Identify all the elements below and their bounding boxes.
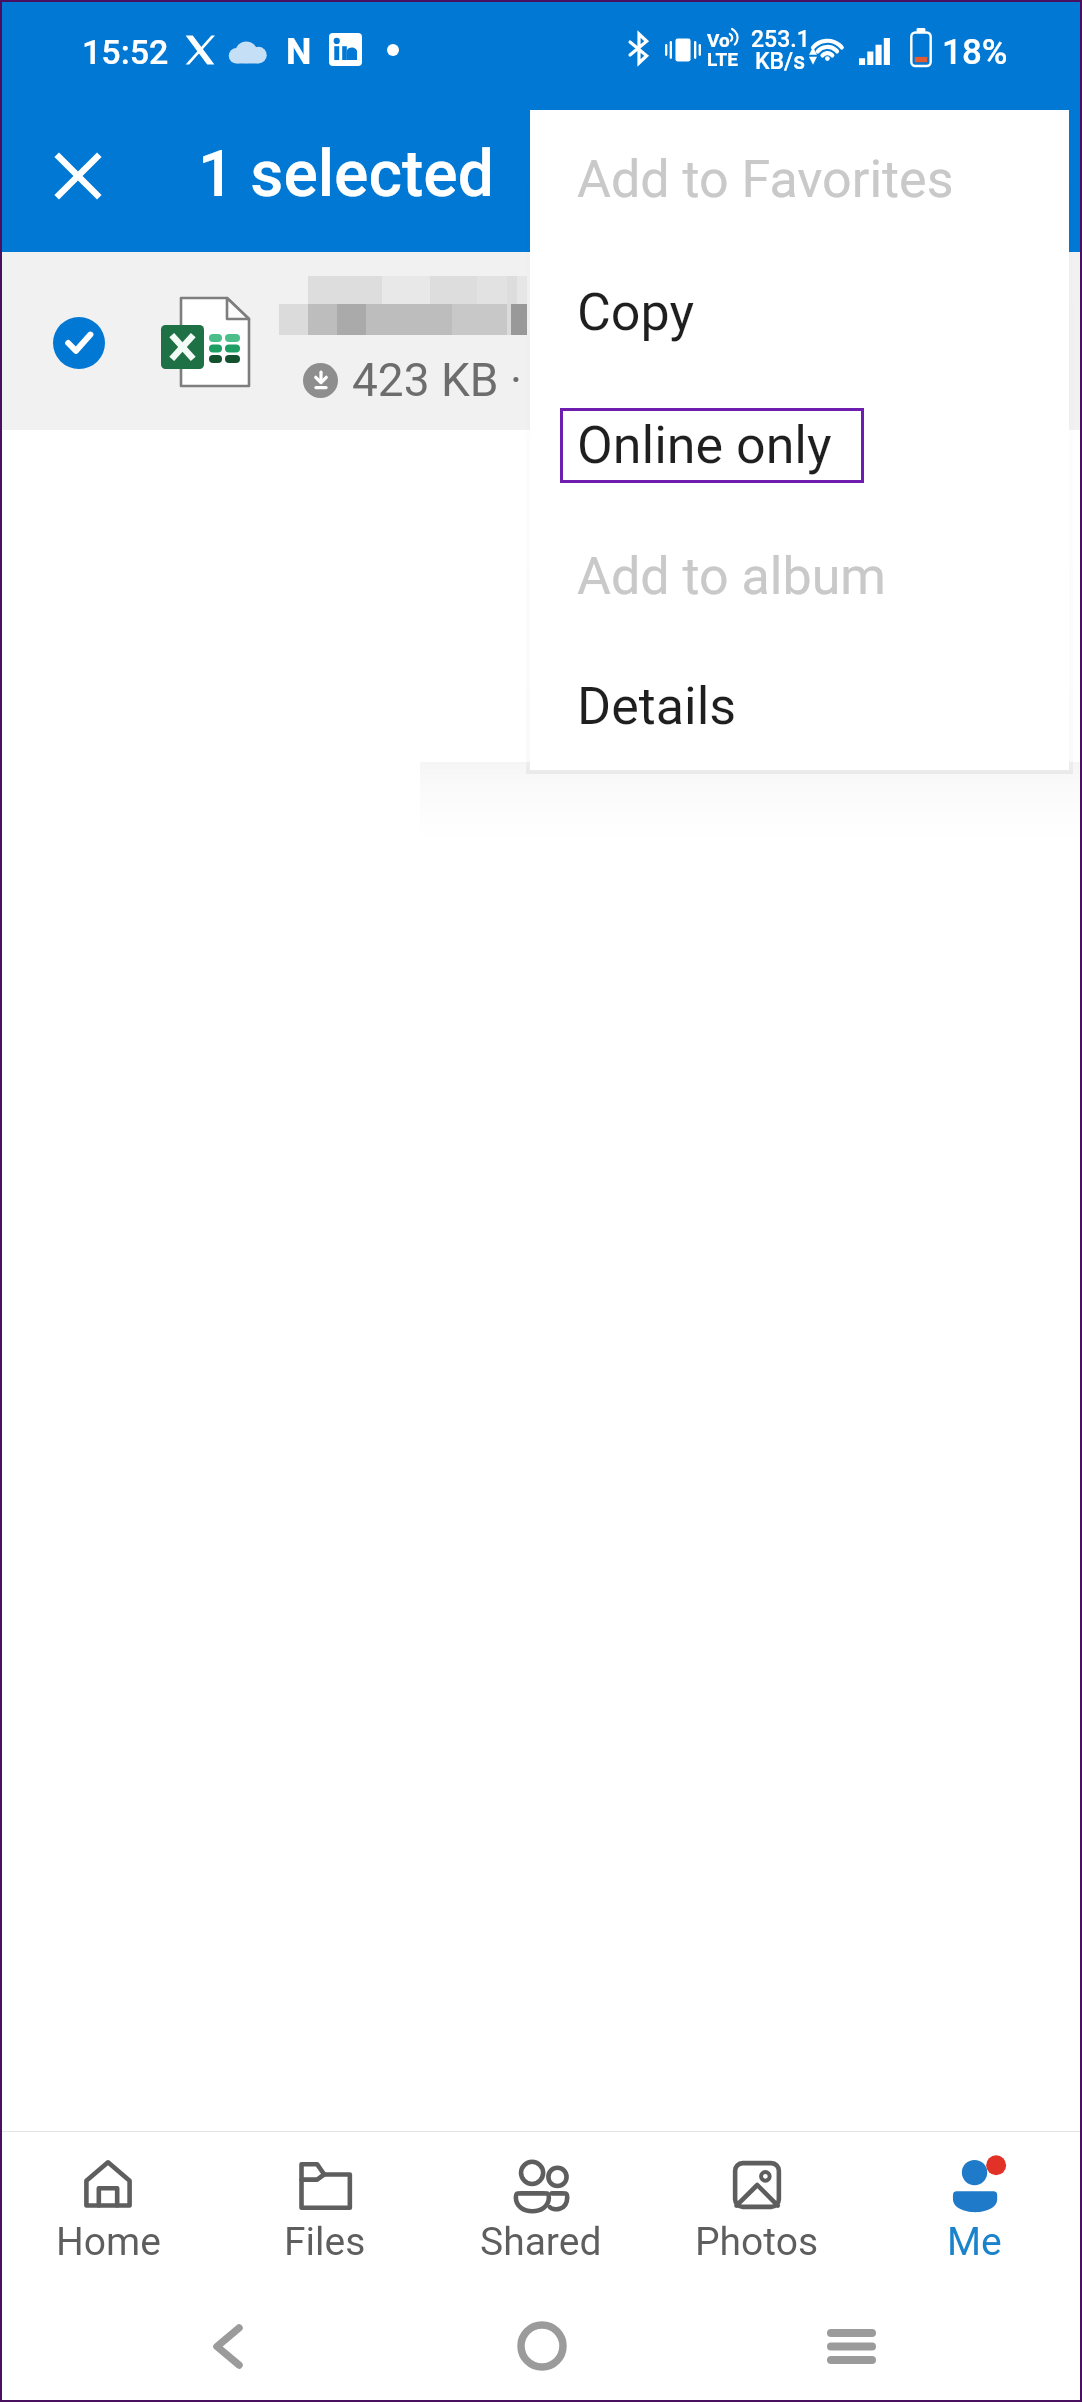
- button[interactable]: Home: [487, 2291, 597, 2401]
- button[interactable]: Photos: [649, 2131, 865, 2290]
- staticText: 423 KB ·: [352, 353, 522, 407]
- staticText: Photos: [695, 2219, 819, 2265]
- button[interactable]: Details: [530, 641, 1069, 771]
- staticText: Add to Favorites: [577, 149, 954, 210]
- staticText: LTE: [707, 48, 738, 70]
- button[interactable]: Close selection: [22, 120, 134, 232]
- button[interactable]: Home: [0, 2131, 216, 2290]
- staticText: KB/s: [755, 48, 806, 75]
- staticText: Me: [947, 2219, 1002, 2265]
- staticText: 1 selected: [198, 137, 494, 212]
- staticText: 253.1: [751, 26, 810, 53]
- button[interactable]: Copy: [530, 247, 1069, 377]
- button[interactable]: Online only: [530, 380, 1069, 510]
- staticText: Add to album: [577, 546, 886, 607]
- staticText: Online only: [577, 415, 832, 476]
- button[interactable]: Me: [866, 2131, 1082, 2290]
- button[interactable]: Recent apps: [796, 2291, 906, 2401]
- staticText: Shared: [480, 2219, 602, 2265]
- staticText: N: [286, 31, 312, 73]
- staticText: 15:52: [82, 32, 169, 72]
- button[interactable]: 423 KB ·: [0, 252, 1082, 430]
- staticText: Home: [56, 2219, 161, 2265]
- staticText: Vo: [707, 29, 730, 51]
- staticText: Copy: [577, 282, 695, 343]
- button[interactable]: Add to Favorites: [530, 114, 1069, 244]
- staticText: 18%: [942, 32, 1008, 73]
- button[interactable]: Files: [217, 2131, 433, 2290]
- button[interactable]: Back: [173, 2291, 283, 2401]
- staticText: Details: [577, 676, 737, 737]
- staticText: Files: [284, 2219, 366, 2265]
- button[interactable]: Shared: [433, 2131, 649, 2290]
- button[interactable]: Add to album: [530, 511, 1069, 641]
